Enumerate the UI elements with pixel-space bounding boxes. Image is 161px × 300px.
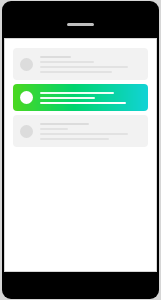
button[interactable] <box>13 84 148 111</box>
button[interactable] <box>13 115 148 147</box>
button[interactable] <box>13 48 148 80</box>
